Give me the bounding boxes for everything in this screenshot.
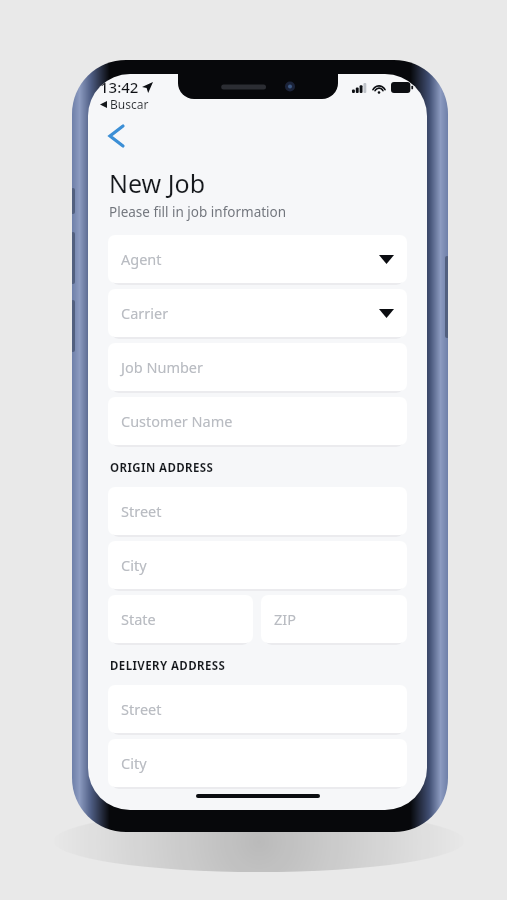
button[interactable]: Back: [98, 118, 134, 154]
staticText: ORIGIN ADDRESS: [110, 460, 214, 476]
staticText: Please fill in job information: [109, 203, 287, 221]
button[interactable]: Customer Name: [108, 397, 407, 445]
button[interactable]: Agent: [108, 235, 407, 283]
staticText: New Job: [109, 166, 206, 200]
button[interactable]: Street: [108, 487, 407, 535]
button[interactable]: City: [108, 541, 407, 589]
button[interactable]: Street: [108, 685, 407, 733]
staticText: 13:42: [100, 77, 139, 97]
button[interactable]: Carrier: [108, 289, 407, 337]
staticText: Street: [121, 501, 394, 521]
button[interactable]: State: [108, 595, 253, 643]
staticText: Customer Name: [121, 411, 394, 431]
button[interactable]: City: [108, 739, 407, 787]
staticText: City: [121, 555, 394, 575]
staticText: State: [121, 609, 240, 629]
staticText: Buscar: [110, 96, 149, 112]
staticText: Job Number: [121, 357, 394, 377]
button[interactable]: ZIP: [261, 595, 407, 643]
staticText: City: [121, 753, 394, 773]
staticText: Carrier: [121, 303, 379, 323]
staticText: DELIVERY ADDRESS: [110, 658, 226, 674]
staticText: Agent: [121, 249, 379, 269]
staticText: ZIP: [274, 609, 394, 629]
button[interactable]: Job Number: [108, 343, 407, 391]
staticText: Street: [121, 699, 394, 719]
